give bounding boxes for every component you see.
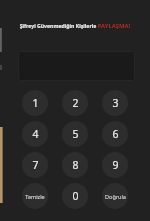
staticText: 2 [72,96,79,110]
button[interactable]: Password entry field [18,51,135,81]
button[interactable]: 2 [62,90,88,116]
button[interactable]: 8 [62,152,88,178]
staticText: 4 [32,127,39,141]
staticText: 5 [72,127,79,141]
staticText: Doğrula [105,193,126,200]
staticText: Temizle [25,193,45,200]
staticText: 7 [32,158,39,172]
staticText: 8 [72,158,79,172]
button[interactable]: 6 [102,121,128,147]
staticText: 0 [72,189,79,203]
button[interactable]: 5 [62,121,88,147]
button[interactable]: Doğrula [102,183,128,209]
staticText: 3 [112,96,119,110]
button[interactable]: 3 [102,90,128,116]
staticText: 6 [112,127,119,141]
staticText: 9 [112,158,119,172]
button[interactable]: 0 [62,183,88,209]
staticText: 1 [32,96,39,110]
button[interactable]: 9 [102,152,128,178]
button[interactable]: 1 [22,90,48,116]
button[interactable]: Temizle [22,183,48,209]
staticText: Şifreyi Güvenmediğin Kişilerle PAYLAŞMA! [0,22,150,30]
button[interactable]: 7 [22,152,48,178]
button[interactable]: 4 [22,121,48,147]
